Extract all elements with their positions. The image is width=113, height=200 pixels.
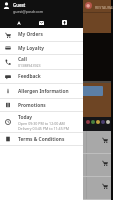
button[interactable]: Add to cart — [0, 131, 111, 153]
staticText: Feedback — [18, 73, 41, 80]
button[interactable]: Promotions — [0, 99, 83, 111]
button[interactable]: Directions — [14, 18, 23, 27]
staticText: 01388943923 — [18, 63, 41, 68]
staticText: RESTAURANT — [95, 5, 113, 10]
staticText: Terms & Conditions — [18, 136, 65, 143]
staticText: Delivery 03:45 PM to 11:45 PM — [18, 126, 70, 131]
other: Add to cart — [102, 137, 108, 143]
staticText: Allergen Information — [18, 88, 69, 95]
button[interactable]: Email — [37, 18, 46, 27]
staticText: My Loyalty — [18, 45, 44, 52]
button[interactable]: Add to cart — [0, 154, 111, 176]
staticText: guest@posdr.com — [13, 9, 44, 14]
button[interactable]: Allergen Information — [0, 84, 83, 98]
button[interactable]: My Orders — [0, 28, 83, 41]
staticText: Promotions — [18, 102, 46, 109]
button[interactable]: Call — [0, 55, 83, 69]
button[interactable]: Terms & Conditions — [0, 133, 83, 145]
staticText: Call — [18, 56, 27, 63]
button[interactable]: Facebook — [60, 18, 69, 27]
button[interactable]: Today — [0, 112, 83, 132]
staticText: Open 09:30 PM to 12:00 AM — [18, 121, 65, 126]
other: Add to cart — [102, 160, 108, 166]
staticText: Today — [18, 114, 33, 121]
button[interactable]: Feedback — [0, 70, 83, 83]
staticText: My Orders — [18, 31, 43, 38]
staticText: Guest — [13, 2, 26, 8]
other: Add to cart — [102, 183, 108, 189]
button[interactable]: My Loyalty — [0, 42, 83, 54]
button[interactable]: Add to cart — [0, 177, 111, 199]
